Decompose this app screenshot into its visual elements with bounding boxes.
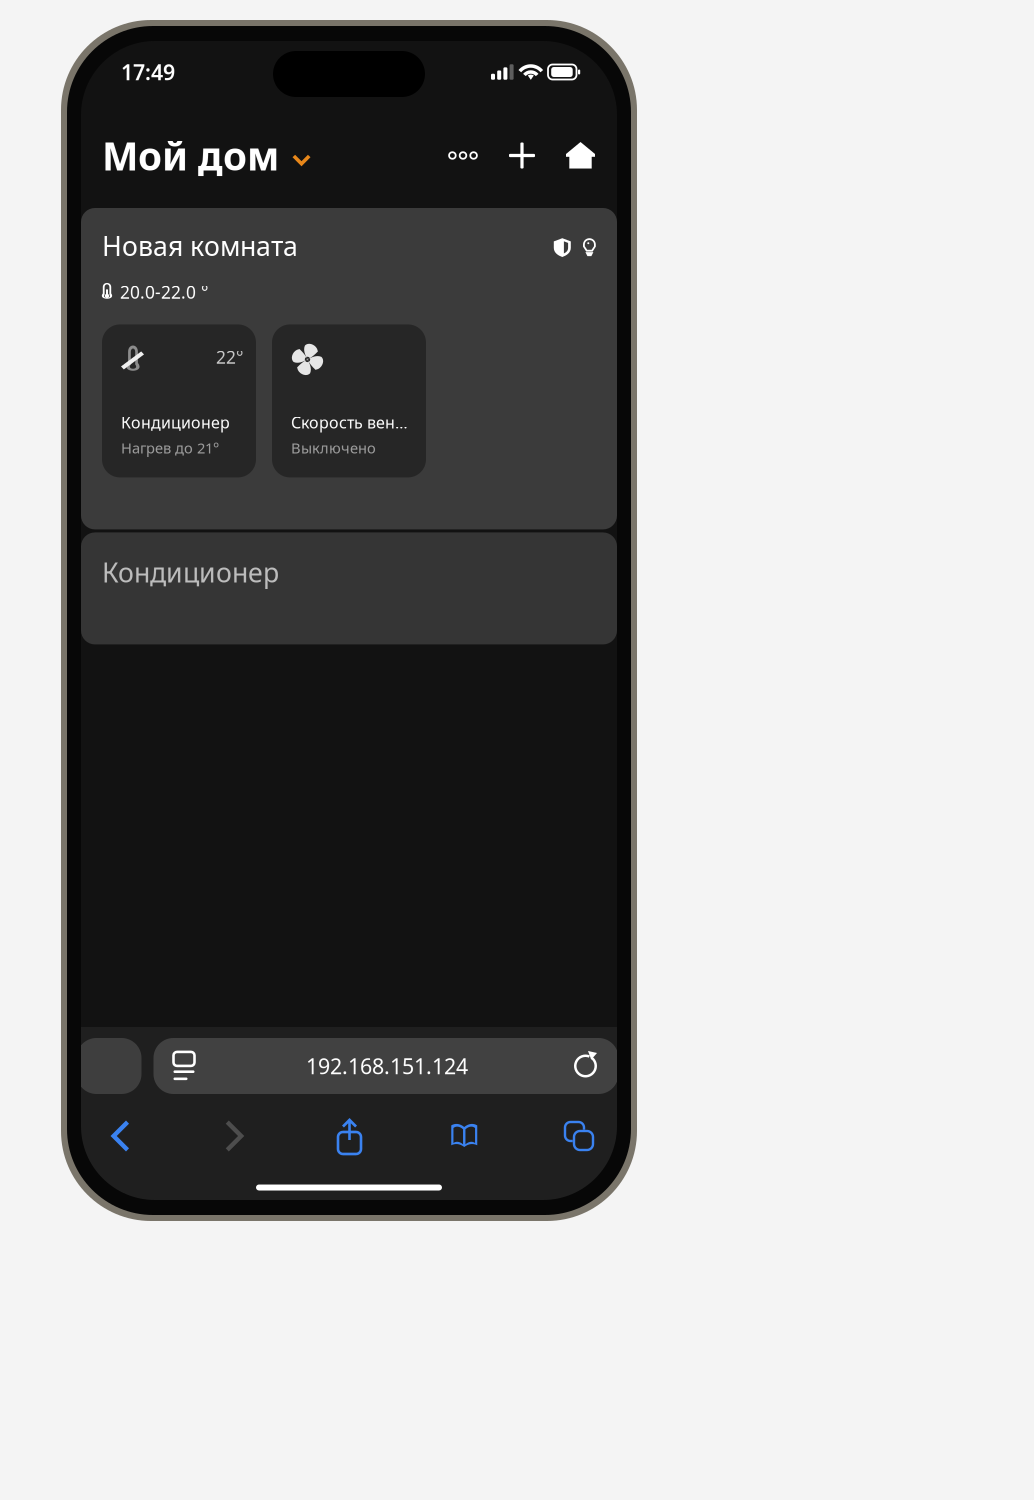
staticText: Мой дом bbox=[102, 130, 279, 181]
button[interactable]: More bbox=[443, 136, 483, 174]
button[interactable]: Tabs bbox=[557, 1114, 601, 1158]
button[interactable]: Bookmarks bbox=[442, 1114, 486, 1158]
staticText: 17:49 bbox=[121, 58, 175, 86]
staticText: Нагрев до 21° bbox=[121, 438, 219, 457]
button[interactable]: 22° bbox=[102, 324, 256, 477]
staticText: 192.168.151.124 bbox=[306, 1052, 468, 1080]
button[interactable]: Page settings bbox=[173, 1046, 203, 1086]
button[interactable] bbox=[272, 324, 426, 477]
button[interactable]: Back bbox=[98, 1114, 142, 1158]
staticText: 22° bbox=[216, 345, 243, 368]
staticText: Скорость вент... bbox=[291, 412, 413, 433]
button[interactable]: Add bbox=[503, 136, 541, 174]
staticText: Новая комната bbox=[102, 228, 298, 263]
button[interactable]: Home bbox=[561, 137, 600, 174]
button[interactable]: Мой дом bbox=[102, 124, 312, 187]
staticText: Кондиционер bbox=[121, 412, 230, 433]
staticText: 20.0-22.0 ° bbox=[120, 280, 208, 303]
button[interactable]: Reload bbox=[570, 1050, 600, 1082]
button[interactable]: Forward bbox=[213, 1114, 257, 1158]
button[interactable]: Share bbox=[327, 1114, 371, 1158]
button[interactable]: Кондиционер bbox=[81, 532, 617, 644]
staticText: Выключено bbox=[291, 438, 376, 457]
staticText: Кондиционер bbox=[102, 554, 279, 590]
